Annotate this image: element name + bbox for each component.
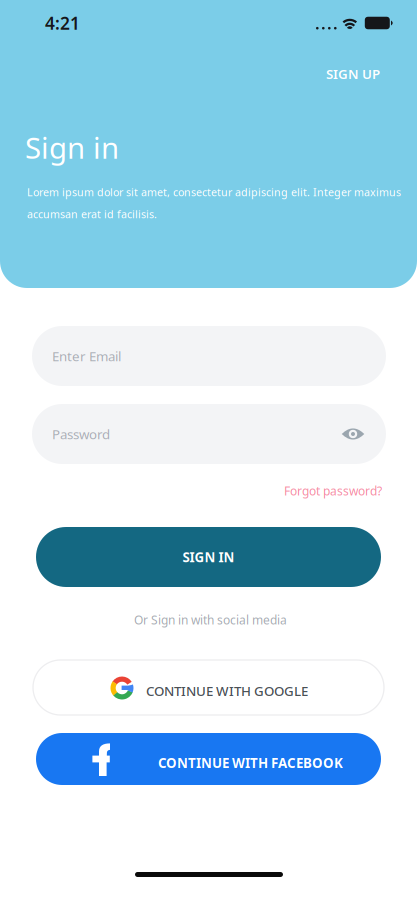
staticText: Enter Email xyxy=(52,347,121,365)
staticText: accumsan erat id facilisis. xyxy=(27,207,157,221)
staticText: CONTINUE WITH FACEBOOK xyxy=(158,754,343,772)
button[interactable]: CONTINUE WITH FACEBOOK xyxy=(36,733,381,785)
staticText: Password xyxy=(52,425,110,443)
button[interactable]: Forgot password? xyxy=(280,479,386,503)
staticText: SIGN IN xyxy=(182,548,234,566)
staticText: Or Sign in with social media xyxy=(134,612,287,628)
staticText: Sign in xyxy=(25,128,119,167)
button[interactable]: SIGN IN xyxy=(36,527,381,587)
button[interactable]: Show password xyxy=(341,425,365,442)
staticText: 4:21 xyxy=(45,11,80,34)
button[interactable]: CONTINUE WITH GOOGLE xyxy=(33,660,384,715)
staticText: Forgot password? xyxy=(284,483,382,499)
staticText: CONTINUE WITH GOOGLE xyxy=(146,682,308,700)
staticText: SIGN UP xyxy=(326,65,380,83)
button[interactable]: SIGN UP xyxy=(315,56,391,92)
staticText: Lorem ipsum dolor sit amet, consectetur … xyxy=(27,185,401,199)
